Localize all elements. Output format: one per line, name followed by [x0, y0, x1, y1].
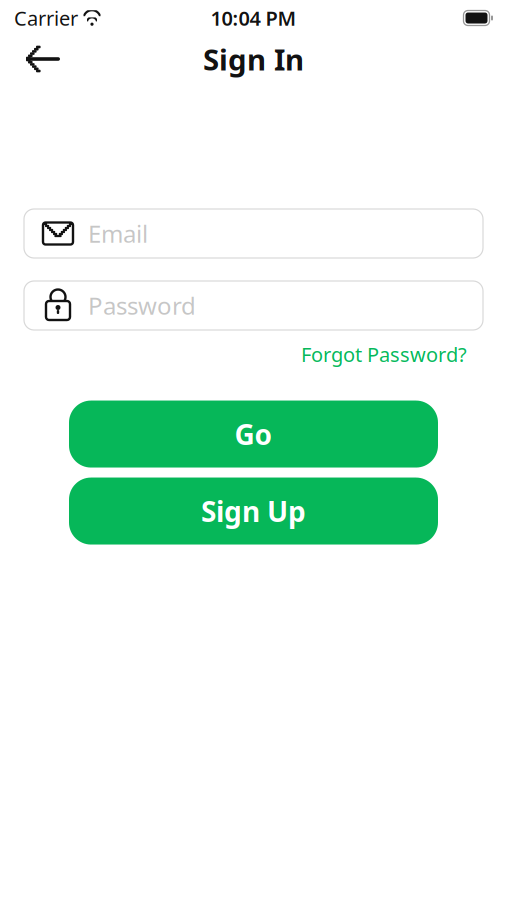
staticText: Forgot Password? — [301, 341, 467, 368]
button[interactable]: Email — [24, 209, 483, 258]
staticText: Sign Up — [201, 492, 306, 530]
button[interactable]: Sign Up — [69, 478, 438, 545]
staticText: Go — [234, 415, 272, 453]
staticText: Carrier — [14, 5, 78, 31]
staticText: Sign In — [203, 39, 304, 78]
staticText: Email — [88, 218, 148, 249]
button[interactable]: Back — [14, 40, 72, 78]
button[interactable]: Forgot Password? — [301, 341, 467, 368]
button[interactable]: Password — [24, 281, 483, 330]
button[interactable]: Go — [69, 401, 438, 468]
staticText: 10:04 PM — [210, 5, 296, 31]
staticText: Password — [88, 290, 196, 321]
